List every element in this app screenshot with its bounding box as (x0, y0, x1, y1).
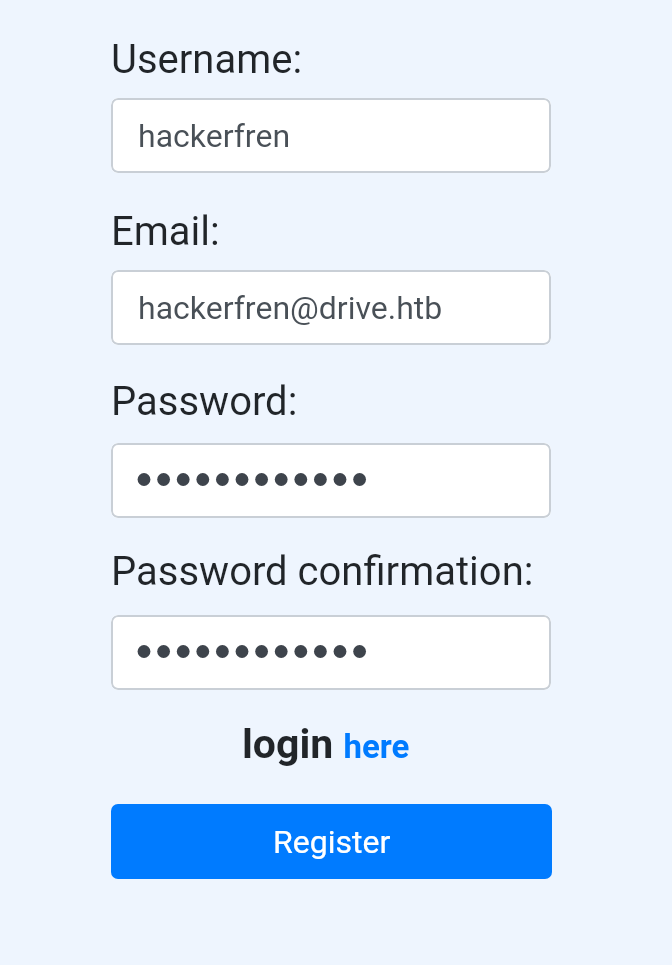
button[interactable] (111, 443, 551, 518)
staticText: Username: (111, 36, 303, 83)
button[interactable] (111, 615, 551, 690)
button[interactable]: hackerfren@drive.htb (111, 270, 551, 345)
staticText: hackerfren (138, 117, 291, 155)
staticText: Password confirmation: (111, 548, 534, 595)
staticText: Email: (111, 208, 220, 255)
staticText: Register (273, 823, 391, 861)
button[interactable]: Register (111, 804, 552, 879)
staticText: hackerfren@drive.htb (138, 289, 443, 327)
button[interactable]: hackerfren (111, 98, 551, 173)
button[interactable]: login here (242, 720, 410, 768)
staticText: Password: (111, 378, 298, 425)
